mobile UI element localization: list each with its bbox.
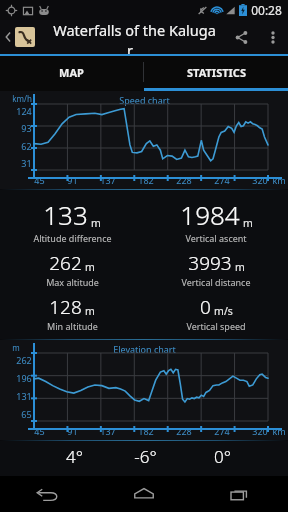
staticText: 124 bbox=[16, 105, 32, 117]
staticText: 91 bbox=[67, 425, 78, 437]
staticText: STATISTICS bbox=[187, 65, 246, 80]
staticText: 262 bbox=[49, 250, 82, 276]
staticText: 228 bbox=[176, 425, 192, 437]
staticText: 274 bbox=[214, 425, 230, 437]
staticText: m/s bbox=[214, 304, 233, 318]
staticText: 182 bbox=[138, 174, 154, 186]
staticText: m bbox=[12, 342, 20, 353]
staticText: Elevation chart bbox=[113, 343, 176, 355]
staticText: 320 bbox=[252, 425, 268, 437]
button[interactable]: Back bbox=[0, 476, 96, 512]
staticText: m bbox=[235, 260, 245, 274]
staticText: 0° bbox=[214, 445, 231, 468]
staticText: 4° bbox=[66, 445, 83, 468]
staticText: km/h bbox=[12, 93, 32, 104]
staticText: -6° bbox=[134, 445, 157, 468]
staticText: m bbox=[85, 304, 95, 318]
button[interactable]: Share bbox=[224, 20, 258, 54]
staticText: Min altitude bbox=[47, 320, 98, 332]
staticText: 320 bbox=[252, 174, 268, 186]
button[interactable]: 128 bbox=[0, 293, 144, 333]
staticText: Vertical distance bbox=[181, 276, 251, 288]
button[interactable]: STATISTICS bbox=[144, 56, 288, 88]
staticText: Vertical speed bbox=[186, 320, 246, 332]
button[interactable]: 3993 bbox=[144, 249, 288, 289]
staticText: 131 bbox=[16, 390, 32, 402]
staticText: 228 bbox=[176, 174, 192, 186]
staticText: Max altitude bbox=[46, 276, 99, 288]
button[interactable]: 133 bbox=[0, 196, 144, 245]
button[interactable]: More options bbox=[258, 22, 288, 52]
staticText: 274 bbox=[214, 174, 230, 186]
staticText: 1984 bbox=[180, 197, 240, 232]
staticText: Vertical ascent bbox=[185, 232, 247, 244]
staticText: km bbox=[272, 174, 286, 186]
staticText: 128 bbox=[49, 294, 82, 320]
button[interactable]: 1984 bbox=[144, 196, 288, 245]
button[interactable]: 0° bbox=[181, 445, 263, 472]
button[interactable]: 0 bbox=[144, 293, 288, 333]
staticText: 196 bbox=[16, 372, 32, 384]
staticText: 3993 bbox=[188, 250, 232, 276]
button[interactable]: Home bbox=[96, 476, 192, 512]
button[interactable]: Navigate up bbox=[0, 26, 41, 48]
staticText: 262 bbox=[16, 354, 32, 366]
staticText: 31 bbox=[21, 157, 32, 169]
button[interactable]: 262 bbox=[0, 249, 144, 289]
staticText: 137 bbox=[100, 174, 116, 186]
staticText: 0 bbox=[200, 294, 211, 320]
staticText: km bbox=[272, 425, 286, 437]
staticText: 45 bbox=[34, 425, 45, 437]
staticText: m bbox=[91, 216, 101, 230]
button[interactable]: -6° bbox=[110, 445, 181, 472]
staticText: Waterfalls of the Kaluga r… bbox=[45, 20, 224, 54]
staticText: 137 bbox=[100, 425, 116, 437]
button[interactable]: 4° bbox=[39, 445, 110, 472]
staticText: 93 bbox=[21, 122, 32, 134]
staticText: 62 bbox=[21, 140, 32, 152]
staticText: m bbox=[85, 260, 95, 274]
staticText: 00:28 bbox=[251, 2, 282, 18]
button[interactable]: MAP bbox=[0, 56, 143, 88]
staticText: 133 bbox=[43, 197, 88, 232]
staticText: 91 bbox=[67, 174, 78, 186]
staticText: 45 bbox=[34, 174, 45, 186]
staticText: 65 bbox=[21, 408, 32, 420]
staticText: MAP bbox=[59, 65, 84, 80]
staticText: Speed chart bbox=[119, 94, 170, 106]
button[interactable]: Recent apps bbox=[192, 476, 288, 512]
staticText: Altitude difference bbox=[33, 232, 112, 244]
staticText: m bbox=[243, 216, 253, 230]
staticText: 182 bbox=[138, 425, 154, 437]
